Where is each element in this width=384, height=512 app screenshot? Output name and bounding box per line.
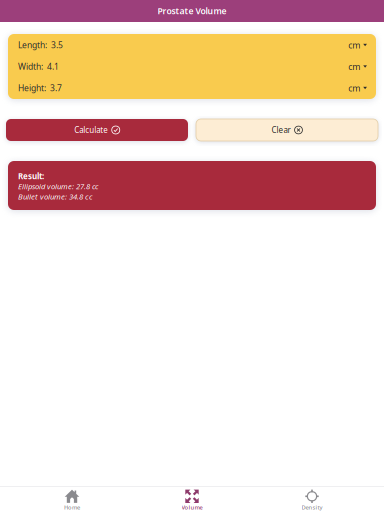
button[interactable]: Clear: [196, 119, 378, 141]
staticText: Height: 3.7: [18, 82, 62, 94]
staticText: Home: [64, 503, 80, 511]
staticText: Volume: [181, 503, 202, 511]
staticText: Calculate: [74, 125, 108, 135]
button[interactable]: cm: [348, 34, 367, 56]
staticText: Prostate Volume: [157, 5, 226, 17]
button[interactable]: cm: [348, 56, 367, 77]
staticText: cm: [348, 82, 360, 94]
staticText: Width: 4.1: [18, 61, 59, 72]
staticText: cm: [348, 61, 360, 72]
button[interactable]: Calculate: [6, 119, 188, 141]
staticText: Length: 3.5: [18, 39, 63, 51]
button[interactable]: Volume: [132, 487, 252, 512]
staticText: Ellipsoid volume: 27.8 cc: [18, 181, 98, 191]
staticText: Result:: [18, 171, 44, 181]
staticText: Clear: [272, 125, 291, 135]
button[interactable]: cm: [348, 77, 367, 99]
button[interactable]: Home: [12, 487, 132, 512]
staticText: Density: [301, 503, 322, 511]
button[interactable]: Density: [252, 487, 372, 512]
staticText: Bullet volume: 34.8 cc: [18, 191, 93, 202]
staticText: cm: [348, 39, 360, 51]
